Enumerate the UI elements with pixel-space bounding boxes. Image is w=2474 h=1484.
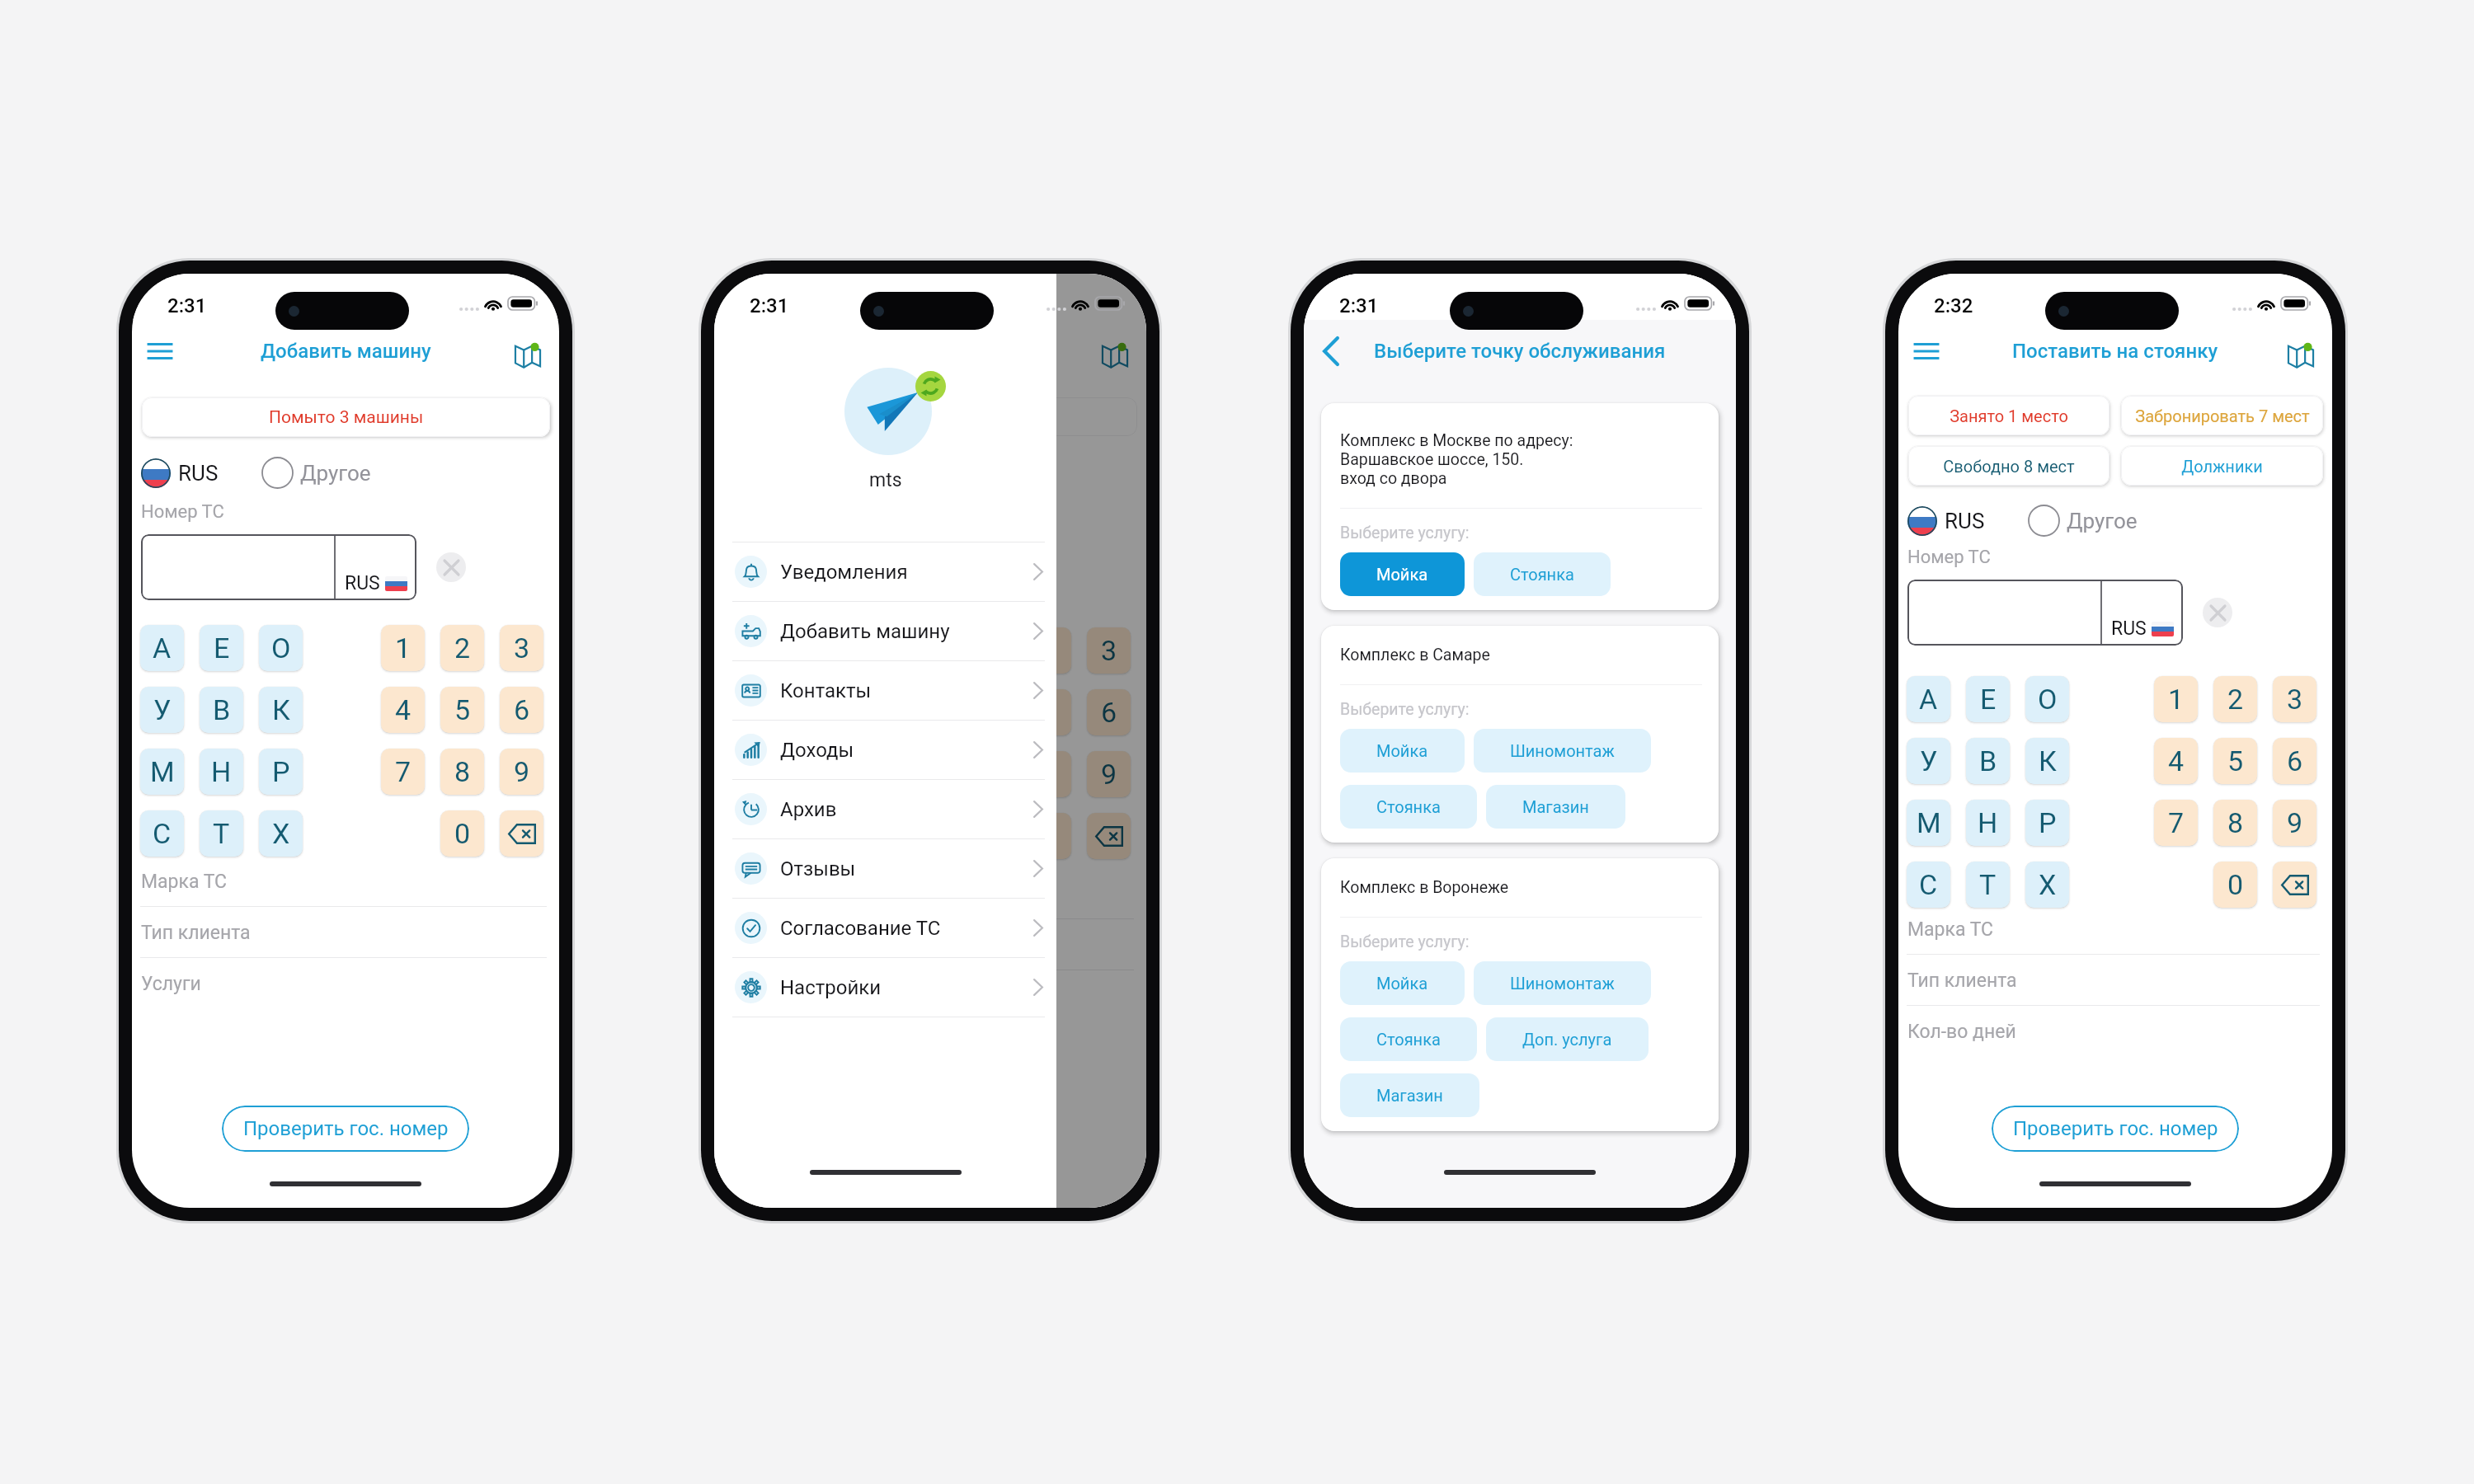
- button[interactable]: Е: [782, 627, 825, 674]
- button[interactable]: Магазин: [1486, 785, 1625, 829]
- button[interactable]: Menu: [1904, 331, 1949, 371]
- button[interactable]: 7: [381, 749, 425, 795]
- button[interactable]: Н: [200, 749, 243, 795]
- button[interactable]: Т: [200, 810, 243, 857]
- button[interactable]: Clear: [2203, 598, 2232, 627]
- button[interactable]: Е: [200, 625, 243, 671]
- button[interactable]: 4: [381, 687, 425, 733]
- button[interactable]: А: [1907, 676, 1950, 722]
- button[interactable]: Добавить машину: [714, 602, 1056, 660]
- button[interactable]: Мойка: [1340, 552, 1465, 596]
- button[interactable]: М: [140, 749, 184, 795]
- button[interactable]: В: [1966, 738, 2010, 784]
- button[interactable]: Другое: [2028, 505, 2138, 537]
- button[interactable]: 5: [440, 687, 484, 733]
- button[interactable]: 8: [440, 749, 484, 795]
- button[interactable]: Р: [259, 749, 303, 795]
- button[interactable]: Доходы: [714, 721, 1056, 779]
- button[interactable]: Мойка: [1340, 729, 1465, 773]
- button[interactable]: У: [1907, 738, 1950, 784]
- button[interactable]: RUS: [141, 534, 416, 600]
- button[interactable]: Должники: [2121, 446, 2323, 486]
- button[interactable]: Отзывы: [714, 839, 1056, 898]
- button[interactable]: 6: [500, 687, 543, 733]
- button[interactable]: 2: [2213, 676, 2257, 722]
- button[interactable]: С: [722, 813, 766, 859]
- button[interactable]: Архив: [714, 780, 1056, 838]
- button[interactable]: 1: [2154, 676, 2198, 722]
- button[interactable]: К: [2025, 738, 2069, 784]
- button[interactable]: Н: [782, 751, 825, 797]
- button[interactable]: Т: [782, 813, 825, 859]
- button[interactable]: К: [259, 687, 303, 733]
- button[interactable]: Back: [1309, 331, 1353, 371]
- button[interactable]: Мойка: [1340, 961, 1465, 1005]
- button[interactable]: У: [722, 689, 766, 735]
- button[interactable]: 9: [500, 749, 543, 795]
- button[interactable]: Согласование ТС: [714, 899, 1056, 957]
- button[interactable]: С: [140, 810, 184, 857]
- button[interactable]: Х: [2025, 862, 2069, 908]
- button[interactable]: Clear: [436, 552, 466, 582]
- button[interactable]: 4: [2154, 738, 2198, 784]
- button[interactable]: Х: [259, 810, 303, 857]
- button[interactable]: 5: [1028, 689, 1071, 735]
- button[interactable]: М: [722, 751, 766, 797]
- button[interactable]: Стоянка: [1474, 552, 1611, 596]
- button[interactable]: 2: [1028, 627, 1071, 674]
- button[interactable]: RUS: [723, 541, 999, 607]
- button[interactable]: Доп. услуга: [1486, 1017, 1649, 1061]
- button[interactable]: Настройки: [714, 958, 1056, 1017]
- button[interactable]: RUS: [141, 458, 219, 488]
- button[interactable]: Стоянка: [1340, 785, 1477, 829]
- button[interactable]: 6: [2273, 738, 2316, 784]
- button[interactable]: 0: [440, 810, 484, 857]
- button[interactable]: RUS: [1907, 580, 2183, 646]
- button[interactable]: А: [140, 625, 184, 671]
- button[interactable]: М: [1907, 800, 1950, 846]
- button[interactable]: 1: [381, 625, 425, 671]
- button[interactable]: Шиномонтаж: [1474, 729, 1651, 773]
- button[interactable]: 3: [500, 625, 543, 671]
- button[interactable]: Магазин: [1340, 1073, 1479, 1117]
- button[interactable]: О: [259, 625, 303, 671]
- button[interactable]: 6: [1087, 689, 1131, 735]
- button[interactable]: Map: [1094, 331, 1139, 371]
- button[interactable]: 9: [2273, 800, 2316, 846]
- button[interactable]: 5: [2213, 738, 2257, 784]
- button[interactable]: В: [200, 687, 243, 733]
- button[interactable]: 8: [2213, 800, 2257, 846]
- button[interactable]: Map: [507, 331, 552, 371]
- button[interactable]: 3: [2273, 676, 2316, 722]
- button[interactable]: 0: [2213, 862, 2257, 908]
- button[interactable]: 2: [440, 625, 484, 671]
- button[interactable]: Уведомления: [714, 542, 1056, 601]
- button[interactable]: Backspace: [500, 810, 543, 857]
- button[interactable]: 0: [1028, 813, 1071, 859]
- button[interactable]: Проверить гос. номер: [222, 1106, 469, 1152]
- button[interactable]: Стоянка: [1340, 1017, 1477, 1061]
- button[interactable]: Clear: [1018, 559, 1048, 589]
- button[interactable]: О: [2025, 676, 2069, 722]
- button[interactable]: 3: [1087, 627, 1131, 674]
- button[interactable]: С: [1907, 862, 1950, 908]
- button[interactable]: Помыто 3 машины: [142, 397, 550, 437]
- button[interactable]: Map: [2280, 331, 2325, 371]
- button[interactable]: У: [140, 687, 184, 733]
- button[interactable]: О: [841, 627, 885, 674]
- button[interactable]: Backspace: [2273, 862, 2316, 908]
- button[interactable]: RUS: [1907, 506, 1985, 536]
- button[interactable]: Шиномонтаж: [1474, 961, 1651, 1005]
- button[interactable]: Р: [841, 751, 885, 797]
- button[interactable]: Menu: [138, 331, 182, 371]
- button[interactable]: Проверить гос. номер: [1992, 1106, 2239, 1152]
- button[interactable]: Свободно 8 мест: [1908, 446, 2109, 486]
- button[interactable]: 8: [1028, 751, 1071, 797]
- button[interactable]: Контакты: [714, 661, 1056, 720]
